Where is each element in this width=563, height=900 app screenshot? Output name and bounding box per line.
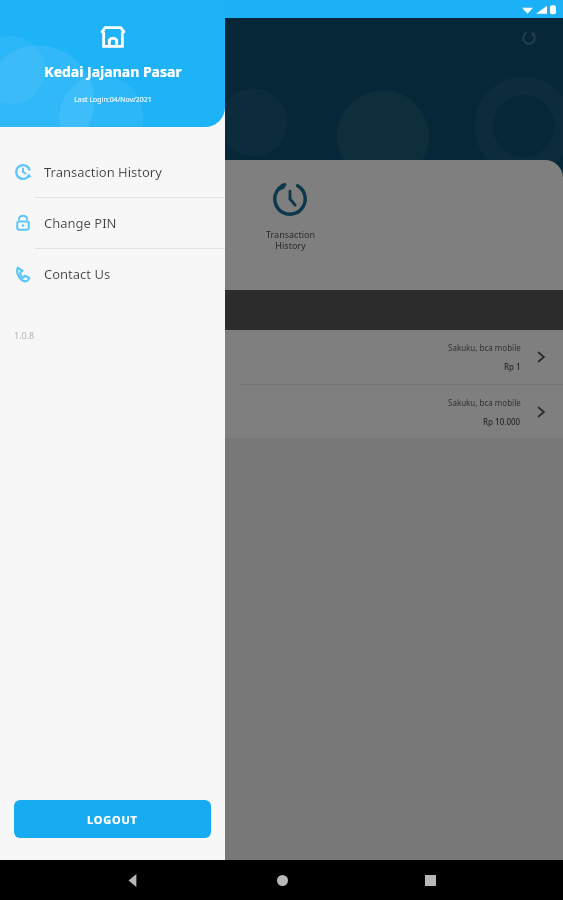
- button[interactable]: Transaction History: [250, 180, 330, 252]
- button[interactable]: Recent apps: [415, 865, 445, 895]
- button[interactable]: Back: [118, 865, 148, 895]
- staticText: Last Login:04/Nov/2021: [74, 95, 152, 105]
- button[interactable]: Sakuku, bca mobile: [0, 385, 563, 439]
- staticText: Transaction History: [266, 228, 315, 252]
- button[interactable]: Home: [267, 865, 297, 895]
- staticText: Kedai Jajanan Pasar: [44, 62, 182, 81]
- button[interactable]: Contact Us: [0, 249, 225, 299]
- staticText: Sakuku, bca mobile: [448, 397, 521, 408]
- staticText: Change PIN: [44, 214, 117, 232]
- staticText: 1.0.8: [14, 329, 35, 341]
- staticText: Rp 1: [504, 361, 521, 372]
- button[interactable]: Transaction History: [0, 147, 225, 197]
- button[interactable]: LOGOUT: [14, 800, 211, 838]
- staticText: Transaction History: [44, 163, 162, 181]
- button[interactable]: Change PIN: [0, 198, 225, 248]
- staticText: LOGOUT: [87, 812, 138, 827]
- button[interactable]: Refresh: [515, 24, 543, 52]
- staticText: Sakuku, bca mobile: [448, 342, 521, 353]
- button[interactable]: Sakuku, bca mobile: [0, 330, 563, 384]
- staticText: Rp 10.000: [483, 416, 521, 427]
- staticText: Contact Us: [44, 265, 111, 283]
